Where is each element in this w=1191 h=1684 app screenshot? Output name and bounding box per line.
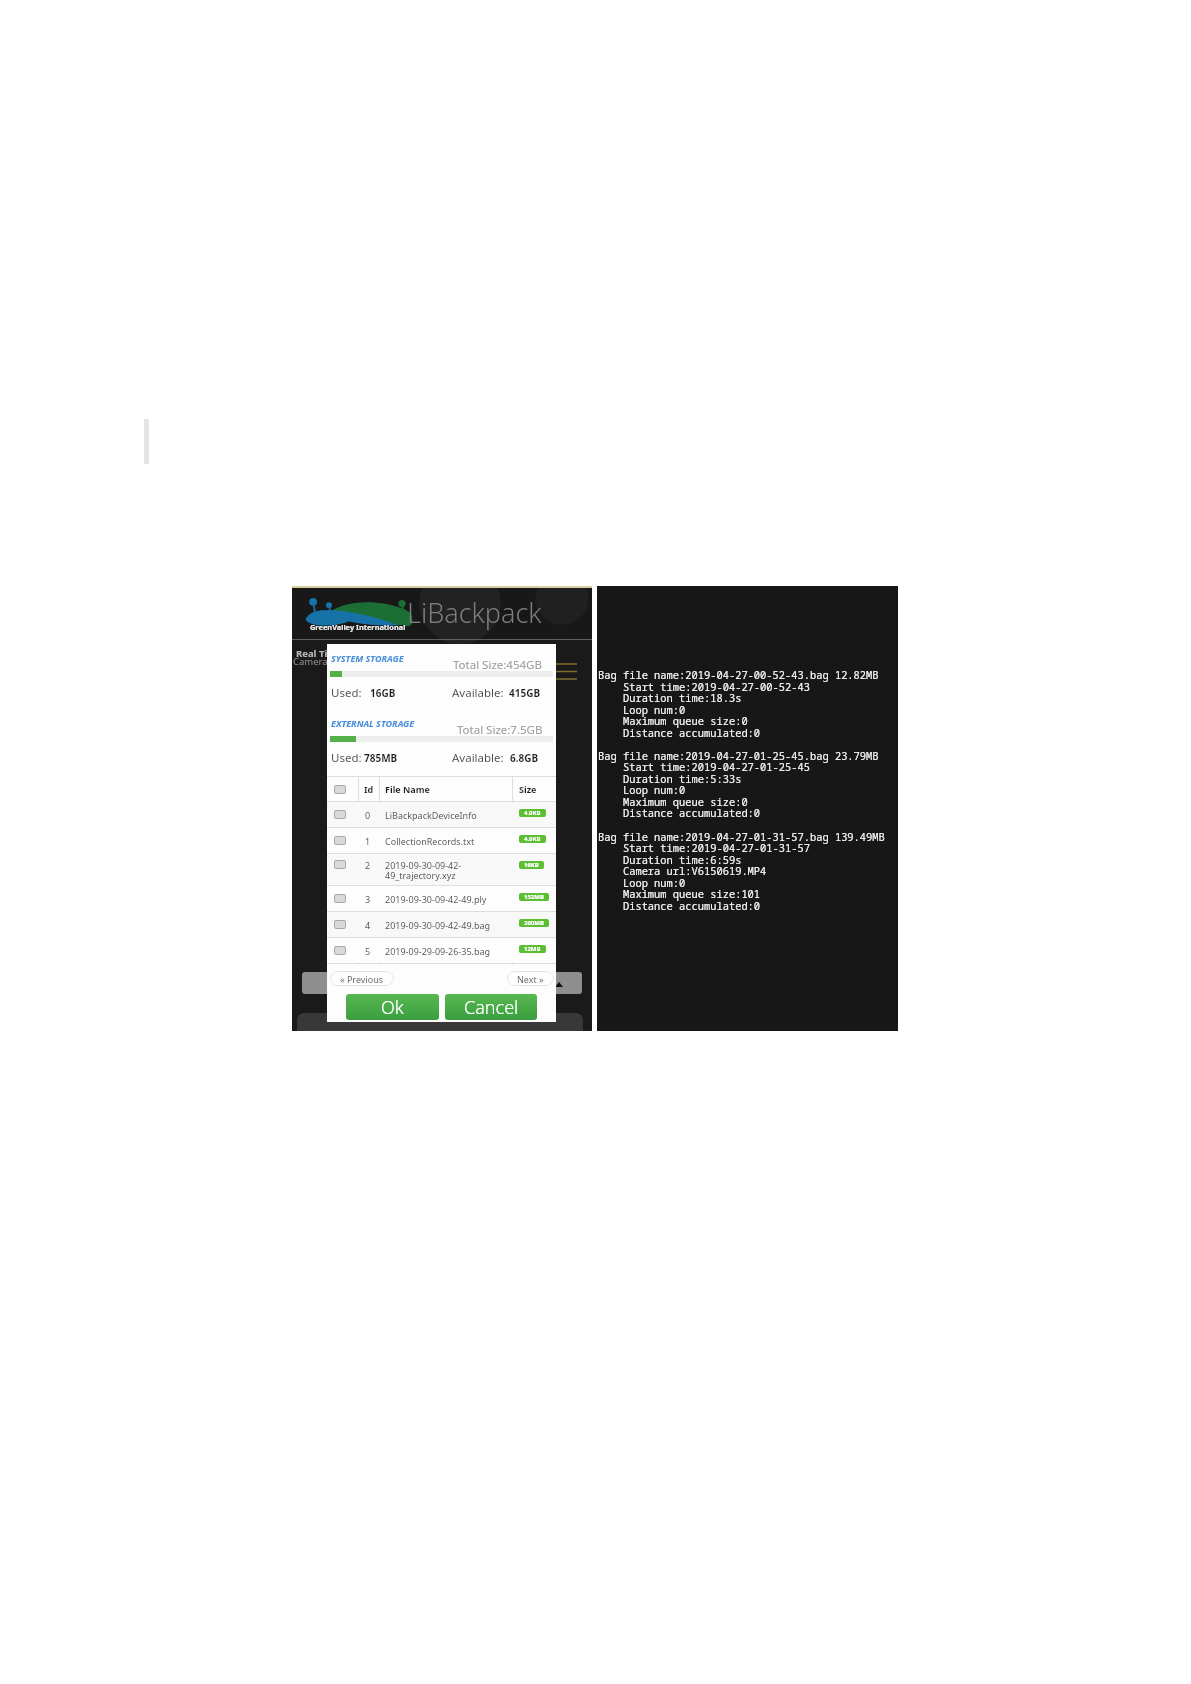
staticText: Distance accumulated:0 bbox=[598, 899, 761, 913]
staticText: LiBackpack bbox=[407, 594, 542, 631]
staticText: Start time:2019-04-27-01-25-45 bbox=[598, 760, 810, 774]
staticText: 49_trajectory.xyz bbox=[385, 869, 456, 881]
staticText: Available: bbox=[452, 685, 504, 701]
staticText: Total Size:7.5GB bbox=[457, 722, 543, 738]
button[interactable]: Cancel bbox=[445, 994, 537, 1020]
button[interactable]: Select file bbox=[334, 860, 346, 869]
staticText: Cancel bbox=[464, 995, 519, 1020]
staticText: 785MB bbox=[364, 751, 398, 765]
staticText: 4.0KB bbox=[524, 835, 541, 843]
staticText: Ok bbox=[381, 995, 404, 1020]
staticText: EXTERNAL STORAGE bbox=[331, 717, 415, 729]
staticText: Id bbox=[364, 783, 374, 795]
staticText: Real Time bbox=[296, 647, 343, 660]
staticText: 2019-09-30-09-42- bbox=[385, 859, 462, 871]
staticText: GreenValley International bbox=[310, 622, 406, 632]
button[interactable]: Select file bbox=[334, 920, 346, 929]
staticText: Duration time:6:59s bbox=[598, 853, 742, 867]
staticText: Start time:2019-04-27-01-31-57 bbox=[598, 841, 810, 855]
button[interactable]: Expand toolbar bbox=[302, 972, 582, 994]
button[interactable]: Menu bbox=[553, 658, 579, 685]
button[interactable]: Select file bbox=[327, 854, 556, 885]
staticText: 3 bbox=[365, 893, 371, 905]
staticText: Duration time:5:33s bbox=[598, 772, 742, 786]
button[interactable]: Select file bbox=[327, 886, 556, 911]
staticText: Used: bbox=[331, 750, 362, 766]
staticText: 152MB bbox=[524, 893, 544, 901]
staticText: LiBackpackDeviceInfo bbox=[385, 809, 477, 821]
staticText: 4 bbox=[365, 919, 371, 931]
staticText: Bag file name:2019-04-27-00-52-43.bag 12… bbox=[598, 668, 879, 682]
button[interactable]: Next » bbox=[507, 971, 554, 986]
button[interactable]: Select file bbox=[327, 912, 556, 937]
staticText: Used: bbox=[331, 685, 362, 701]
button[interactable]: Select file bbox=[327, 938, 556, 963]
staticText: 2 bbox=[365, 859, 371, 871]
button[interactable]: « Previous bbox=[330, 971, 394, 986]
staticText: Start time:2019-04-27-00-52-43 bbox=[598, 680, 810, 694]
staticText: Distance accumulated:0 bbox=[598, 726, 761, 740]
button[interactable]: Select file bbox=[327, 802, 556, 827]
button[interactable]: Ok bbox=[346, 994, 439, 1020]
staticText: Loop num:0 bbox=[598, 703, 686, 717]
staticText: 5 bbox=[365, 945, 371, 957]
staticText: Size bbox=[519, 783, 537, 795]
button[interactable]: Select file bbox=[334, 836, 346, 845]
staticText: « Previous bbox=[340, 973, 384, 985]
staticText: 415GB bbox=[509, 686, 541, 700]
staticText: File Name bbox=[385, 783, 430, 795]
staticText: Camera url:V6150619.MP4 bbox=[598, 864, 767, 878]
staticText: Bag file name:2019-04-27-01-31-57.bag 13… bbox=[598, 830, 885, 844]
button[interactable]: Select file bbox=[334, 810, 346, 819]
button[interactable]: Select file bbox=[327, 828, 556, 853]
staticText: 0 bbox=[365, 809, 371, 821]
staticText: 6.8GB bbox=[510, 751, 539, 765]
staticText: 12MB bbox=[524, 945, 541, 953]
button[interactable]: Select file bbox=[334, 785, 346, 794]
staticText: 4.0KB bbox=[524, 809, 541, 817]
staticText: Camera bbox=[293, 655, 328, 668]
staticText: 16GB bbox=[370, 686, 396, 700]
staticText: Bag file name:2019-04-27-01-25-45.bag 23… bbox=[598, 749, 879, 763]
staticText: Maximum queue size:0 bbox=[598, 714, 748, 728]
staticText: 2019-09-30-09-42-49.ply bbox=[385, 893, 487, 905]
staticText: Maximum queue size:0 bbox=[598, 795, 748, 809]
button[interactable]: Select file bbox=[334, 946, 346, 955]
staticText: Maximum queue size:101 bbox=[598, 887, 761, 901]
staticText: Loop num:0 bbox=[598, 876, 686, 890]
staticText: Next » bbox=[517, 973, 544, 985]
staticText: 1 bbox=[365, 835, 371, 847]
staticText: Loop num:0 bbox=[598, 783, 686, 797]
button[interactable]: Select file bbox=[334, 894, 346, 903]
staticText: 16KB bbox=[524, 861, 539, 869]
staticText: CollectionRecords.txt bbox=[385, 835, 475, 847]
staticText: 200MB bbox=[524, 919, 544, 927]
staticText: Available: bbox=[452, 750, 504, 766]
staticText: Total Size:454GB bbox=[453, 657, 542, 673]
staticText: Duration time:18.3s bbox=[598, 691, 742, 705]
staticText: SYSTEM STORAGE bbox=[331, 652, 404, 664]
staticText: 2019-09-30-09-42-49.bag bbox=[385, 919, 491, 931]
staticText: 2019-09-29-09-26-35.bag bbox=[385, 945, 491, 957]
staticText: Distance accumulated:0 bbox=[598, 806, 761, 820]
